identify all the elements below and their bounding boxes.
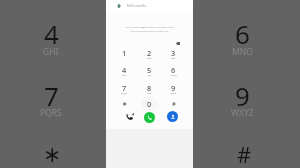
button[interactable]: Mil Escamilla — [106, 0, 193, 11]
button[interactable]: 8 — [141, 80, 158, 97]
staticText: 0 — [147, 99, 152, 109]
button[interactable]: Backspace — [164, 35, 188, 49]
button[interactable]: 7 — [16, 73, 86, 117]
staticText: MNO — [171, 73, 177, 76]
staticText: 1 — [122, 48, 127, 58]
staticText: 7 — [122, 83, 127, 93]
staticText: 4 — [44, 16, 59, 51]
button[interactable]: # — [165, 96, 182, 113]
staticText: WXYZ — [170, 91, 177, 94]
button[interactable]: ∗ — [17, 133, 87, 168]
staticText: 7 — [44, 78, 59, 113]
staticText: + — [149, 107, 151, 110]
button[interactable]: Video call — [123, 109, 137, 123]
button[interactable]: ∗ — [116, 96, 133, 113]
staticText: 5 — [147, 65, 152, 75]
staticText: 3 — [171, 48, 176, 58]
staticText: ∗ — [43, 142, 62, 168]
staticText: PQRS — [121, 91, 128, 94]
staticText: Mil Escamilla — [127, 4, 147, 8]
button[interactable]: 4 — [16, 11, 86, 55]
staticText: 6 — [171, 65, 176, 75]
button[interactable]: 5 — [141, 62, 158, 79]
staticText: JKL — [148, 73, 152, 76]
button[interactable]: 1 — [116, 45, 133, 62]
button[interactable]: 2 — [141, 45, 158, 62]
staticText: You are about to Dial a number. Do conti… — [125, 26, 174, 32]
staticText: ABC — [147, 56, 152, 59]
staticText: DEF — [171, 56, 176, 59]
staticText: 9 — [235, 78, 250, 113]
button[interactable]: 6 — [207, 11, 277, 55]
staticText: 8 — [147, 83, 152, 93]
staticText: ∗ — [122, 100, 128, 108]
staticText: 2 — [147, 48, 152, 58]
staticText: 6 — [235, 16, 250, 51]
button[interactable]: Call — [144, 112, 155, 123]
button[interactable]: 7 — [116, 80, 133, 97]
staticText: GHI — [122, 73, 127, 76]
button[interactable]: 9 — [207, 73, 277, 117]
staticText: TUV — [147, 91, 152, 94]
staticText: GHI — [43, 46, 59, 58]
staticText: WXYZ — [231, 107, 254, 119]
button[interactable]: 3 — [165, 45, 182, 62]
button[interactable]: 9 — [165, 80, 182, 97]
staticText: 9 — [171, 83, 176, 93]
staticText: MNO — [232, 46, 253, 58]
staticText: # — [172, 100, 176, 108]
button[interactable]: Contacts — [167, 111, 178, 122]
staticText: 4 — [122, 65, 127, 75]
staticText: PQRS — [40, 107, 62, 119]
button[interactable]: 0 — [141, 96, 158, 113]
button[interactable]: 6 — [165, 62, 182, 79]
button[interactable]: 4 — [116, 62, 133, 79]
button[interactable]: # — [209, 132, 279, 168]
staticText: # — [237, 139, 252, 168]
